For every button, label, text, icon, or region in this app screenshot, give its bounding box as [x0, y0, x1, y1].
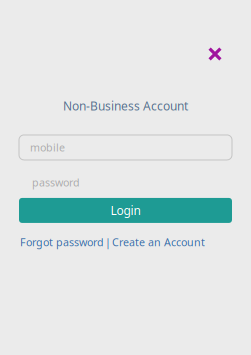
staticText: Create an Account — [112, 235, 205, 249]
staticText: | — [105, 235, 111, 249]
button[interactable]: Login — [19, 198, 232, 223]
staticText: Login — [110, 202, 140, 218]
button[interactable]: password — [19, 170, 232, 195]
button[interactable]: Close — [203, 42, 227, 66]
button[interactable]: mobile — [19, 135, 232, 160]
staticText: Forgot password — [20, 235, 104, 249]
staticText: Non-Business Account — [63, 98, 188, 114]
staticText: mobile — [30, 140, 65, 155]
button[interactable]: Create an Account — [112, 235, 205, 249]
staticText: password — [32, 175, 80, 190]
button[interactable]: Forgot password — [20, 235, 104, 249]
